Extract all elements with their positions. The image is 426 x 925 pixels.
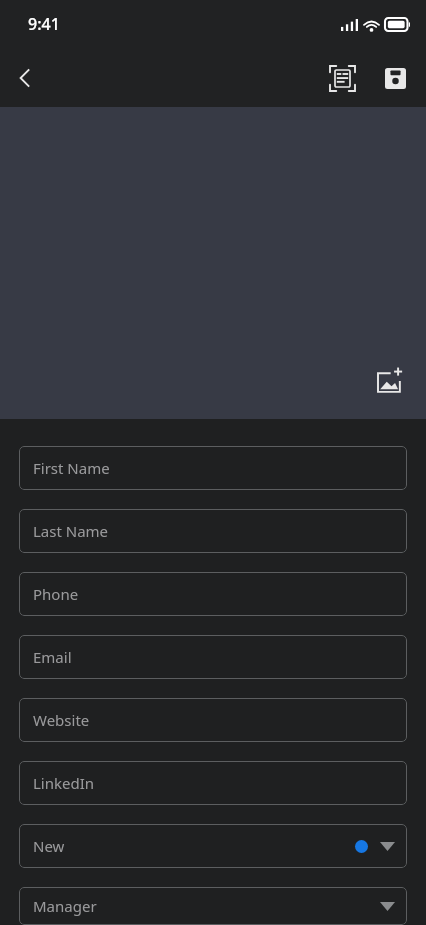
button[interactable]: Back: [4, 57, 46, 99]
button[interactable]: Last Name: [19, 509, 407, 553]
button[interactable]: New: [19, 824, 407, 868]
button[interactable]: LinkedIn: [19, 761, 407, 805]
staticText: LinkedIn: [33, 773, 95, 793]
staticText: New: [33, 836, 65, 856]
button[interactable]: Phone: [19, 572, 407, 616]
button[interactable]: Save: [374, 57, 416, 99]
button[interactable]: Add photo: [370, 361, 412, 403]
staticText: Manager: [33, 896, 97, 916]
button[interactable]: Manager: [19, 887, 407, 925]
button[interactable]: Website: [19, 698, 407, 742]
staticText: 9:41: [28, 13, 60, 35]
button[interactable]: Scan business card: [320, 56, 364, 100]
staticText: Email: [33, 647, 72, 667]
staticText: First Name: [33, 458, 110, 478]
button[interactable]: Email: [19, 635, 407, 679]
button[interactable]: First Name: [19, 446, 407, 490]
staticText: Phone: [33, 584, 79, 604]
staticText: Website: [33, 710, 90, 730]
staticText: Last Name: [33, 521, 109, 541]
